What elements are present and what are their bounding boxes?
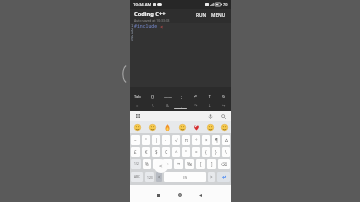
button[interactable]: Emoji 3: [160, 121, 175, 133]
button[interactable]: Apps: [134, 112, 142, 120]
staticText: Tab: [134, 94, 141, 99]
staticText: <: [160, 23, 164, 30]
staticText: ↑: [208, 94, 212, 99]
staticText: ×: [205, 137, 208, 143]
button[interactable]: ×: [202, 135, 210, 145]
staticText: ∆: [225, 138, 228, 143]
button[interactable]: ABC: [131, 172, 143, 182]
button[interactable]: Recents: [153, 190, 163, 200]
staticText: 2: [131, 27, 134, 32]
staticText: <: [158, 174, 161, 180]
button[interactable]: ↪: [217, 101, 231, 109]
button[interactable]: \: [145, 101, 160, 109]
button[interactable]: Home: [175, 190, 185, 200]
button[interactable]: ¶: [212, 135, 220, 145]
staticText: 3: [131, 30, 134, 35]
button[interactable]: EN: [164, 172, 206, 182]
button[interactable]: =: [130, 101, 145, 109]
staticText: ↻: [222, 94, 226, 99]
button[interactable]: %: [143, 159, 151, 169]
button[interactable]: \: [222, 147, 230, 157]
button[interactable]: >: [163, 159, 172, 169]
staticText: 5: [131, 37, 134, 42]
staticText: Auto saved at 10:33:33: [134, 18, 170, 23]
button[interactable]: ↷: [189, 101, 203, 109]
staticText: °: [145, 137, 147, 143]
staticText: =: [195, 149, 198, 155]
staticText: ~: [134, 137, 137, 143]
button[interactable]: ,: [175, 101, 189, 109]
button[interactable]: ——: [160, 92, 175, 101]
button[interactable]: ↑: [203, 92, 217, 101]
button[interactable]: <: [156, 172, 162, 182]
button[interactable]: °: [142, 135, 150, 145]
button[interactable]: {}: [145, 92, 160, 101]
button[interactable]: Voice input: [206, 112, 214, 120]
button[interactable]: >: [208, 172, 215, 182]
button[interactable]: Emoji 1: [130, 121, 145, 133]
staticText: £: [134, 149, 137, 155]
staticText: ¢: [165, 149, 168, 155]
staticText: #include: [134, 23, 158, 30]
button[interactable]: √: [172, 135, 180, 145]
staticText: >: [166, 161, 169, 167]
button[interactable]: {: [202, 147, 210, 157]
button[interactable]: £: [131, 147, 140, 157]
button[interactable]: Emoji 5: [189, 121, 203, 133]
button[interactable]: ¢: [162, 147, 170, 157]
button[interactable]: ÷: [192, 135, 200, 145]
staticText: =: [136, 103, 139, 108]
button[interactable]: ;: [175, 92, 189, 101]
button[interactable]: Back: [195, 190, 205, 200]
button[interactable]: ]: [207, 159, 216, 169]
button[interactable]: ^: [172, 147, 180, 157]
button[interactable]: &: [160, 101, 175, 109]
button[interactable]: Tab: [130, 92, 145, 101]
staticText: ↷: [194, 103, 198, 108]
staticText: ™: [177, 161, 181, 167]
button[interactable]: Emoji 6: [203, 121, 217, 133]
button[interactable]: $: [152, 147, 160, 157]
button[interactable]: ⌫: [218, 159, 230, 169]
button[interactable]: 123: [145, 172, 154, 182]
button[interactable]: ↓: [203, 101, 217, 109]
button[interactable]: [: [196, 159, 205, 169]
staticText: \: [225, 149, 227, 155]
button[interactable]: ·: [162, 135, 170, 145]
button[interactable]: 1/2: [131, 159, 141, 169]
button[interactable]: €: [142, 147, 150, 157]
staticText: ↶: [194, 94, 198, 99]
staticText: ]: [211, 161, 213, 167]
button[interactable]: ↻: [217, 92, 231, 101]
button[interactable]: }: [212, 147, 220, 157]
button[interactable]: Emoji 2: [145, 121, 160, 133]
button[interactable]: ™: [174, 159, 183, 169]
button[interactable]: RUN: [193, 9, 210, 22]
staticText: \: [152, 103, 154, 108]
button[interactable]: ↶: [189, 92, 203, 101]
button[interactable]: [217, 172, 230, 182]
button[interactable]: Emoji 7: [217, 121, 231, 133]
button[interactable]: ~: [131, 135, 140, 145]
button[interactable]: MENU: [208, 9, 229, 22]
button[interactable]: ∆: [222, 135, 230, 145]
staticText: >: [210, 174, 213, 180]
staticText: EN: [183, 175, 188, 179]
staticText: 70: [223, 2, 228, 7]
button[interactable]: Emoji 4: [175, 121, 189, 133]
staticText: 10:34 AM: [133, 2, 152, 8]
button[interactable]: Search: [219, 112, 227, 120]
staticText: {}: [151, 94, 155, 99]
staticText: π: [185, 137, 188, 143]
button[interactable]: ‰: [185, 159, 194, 169]
button[interactable]: |: [152, 135, 160, 145]
button[interactable]: π: [182, 135, 190, 145]
staticText: %: [145, 161, 149, 167]
staticText: <: [159, 162, 163, 170]
button[interactable]: °: [182, 147, 190, 157]
button[interactable]: <: [153, 159, 161, 169]
staticText: ↪: [222, 103, 226, 108]
button[interactable]: =: [192, 147, 200, 157]
staticText: &: [166, 103, 169, 108]
